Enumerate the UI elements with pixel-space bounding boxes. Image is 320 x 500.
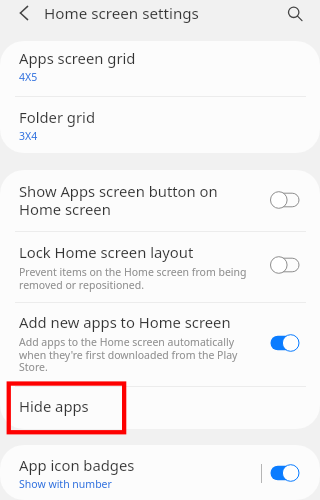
button[interactable]: Switch, off bbox=[270, 191, 300, 209]
button[interactable]: Hide apps bbox=[0, 387, 320, 429]
button[interactable]: Switch, off bbox=[270, 256, 300, 274]
staticText: Hide apps bbox=[19, 396, 89, 416]
button[interactable]: Folder grid bbox=[0, 97, 320, 153]
staticText: 3X4 bbox=[19, 129, 38, 143]
button[interactable]: App icon badges bbox=[0, 445, 320, 500]
button[interactable]: Add new apps to Home screen bbox=[0, 303, 320, 386]
staticText: Add apps to the Home screen automaticall… bbox=[19, 335, 238, 374]
button[interactable]: Search bbox=[276, 0, 310, 29]
staticText: Apps screen grid bbox=[19, 48, 136, 68]
button[interactable]: Show Apps screen button on Home screen bbox=[0, 170, 320, 231]
button[interactable]: Apps screen grid bbox=[0, 41, 320, 96]
staticText: App icon badges bbox=[19, 455, 135, 475]
staticText: Show with number bbox=[19, 477, 112, 491]
button[interactable]: Lock Home screen layout bbox=[0, 232, 320, 302]
staticText: Add new apps to Home screen bbox=[19, 312, 231, 332]
staticText: Lock Home screen layout bbox=[19, 242, 194, 262]
staticText: 4X5 bbox=[19, 70, 38, 84]
staticText: Prevent items on the Home screen from be… bbox=[19, 265, 247, 292]
staticText: Home screen settings bbox=[44, 3, 199, 24]
button[interactable]: Navigate up bbox=[7, 0, 41, 30]
staticText: Folder grid bbox=[19, 107, 95, 127]
button[interactable]: Switch, on bbox=[270, 334, 300, 352]
staticText: Show Apps screen button on Home screen bbox=[19, 181, 218, 219]
button[interactable]: Switch, on bbox=[270, 464, 300, 482]
